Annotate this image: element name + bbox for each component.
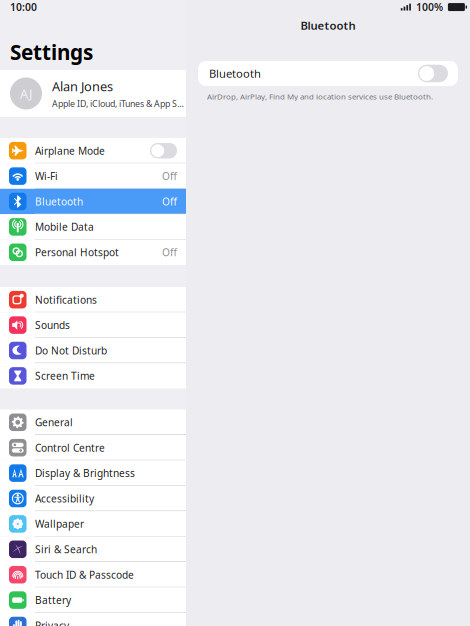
button[interactable]: AJ [0, 70, 186, 117]
button[interactable]: Sounds [0, 312, 186, 338]
button[interactable]: Wallpaper [0, 511, 186, 537]
button[interactable]: Mobile Data [0, 214, 186, 240]
button[interactable]: Touch ID & Passcode [0, 562, 186, 587]
button[interactable]: General [0, 410, 186, 435]
staticText: Siri & Search [35, 542, 97, 556]
staticText: Control Centre [35, 441, 105, 455]
button[interactable]: Accessibility [0, 486, 186, 511]
button[interactable]: Airplane Mode [0, 138, 186, 163]
staticText: Screen Time [35, 369, 95, 383]
staticText: Apple ID, iCloud, iTunes & App St… [52, 97, 186, 109]
staticText: AJ [20, 85, 32, 102]
staticText: Off [162, 169, 177, 183]
staticText: Sounds [35, 318, 70, 332]
staticText: Off [162, 195, 177, 208]
button[interactable]: Wi-Fi [0, 163, 186, 189]
button[interactable]: Siri & Search [0, 537, 186, 562]
button[interactable]: Do Not Disturb [0, 338, 186, 363]
staticText: Notifications [35, 293, 97, 307]
staticText: Accessibility [35, 492, 94, 505]
staticText: AirDrop, AirPlay, Find My and location s… [207, 91, 433, 102]
staticText: Do Not Disturb [35, 344, 107, 357]
button[interactable]: Personal Hotspot [0, 240, 186, 265]
staticText: Off [162, 245, 177, 259]
button[interactable]: Bluetooth [198, 61, 458, 86]
button[interactable]: Display & Brightness [0, 460, 186, 486]
staticText: Wi-Fi [35, 169, 58, 183]
button[interactable]: Bluetooth [0, 189, 186, 214]
button[interactable]: Control Centre [0, 435, 186, 460]
staticText: 10:00 [10, 0, 37, 14]
staticText: Alan Jones [52, 77, 113, 95]
button[interactable]: Battery [0, 587, 186, 613]
staticText: Privacy [35, 619, 69, 626]
staticText: Personal Hotspot [35, 245, 119, 259]
staticText: General [35, 415, 73, 429]
staticText: 100% [416, 0, 443, 14]
staticText: Wallpaper [35, 517, 84, 531]
staticText: Bluetooth [35, 195, 83, 208]
staticText: Bluetooth [209, 66, 261, 81]
staticText: Airplane Mode [35, 144, 105, 158]
staticText: Display & Brightness [35, 466, 135, 480]
staticText: Mobile Data [35, 220, 94, 234]
staticText: Bluetooth [300, 18, 355, 33]
staticText: Battery [35, 593, 71, 607]
staticText: Touch ID & Passcode [35, 568, 134, 582]
button[interactable]: Notifications [0, 287, 186, 312]
button[interactable]: Privacy [0, 613, 186, 626]
staticText: Settings [10, 38, 93, 66]
button[interactable]: Screen Time [0, 363, 186, 389]
